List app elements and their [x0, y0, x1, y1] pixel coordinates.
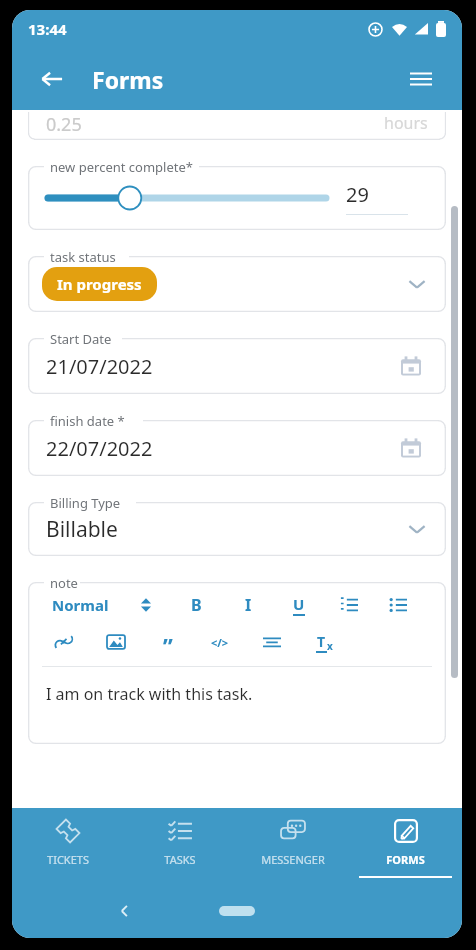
button[interactable]: 21/07/2022 — [28, 338, 446, 394]
button[interactable]: Billable — [28, 502, 446, 556]
button[interactable]: Link — [52, 630, 76, 654]
staticText: Normal — [52, 595, 109, 615]
button[interactable]: MESSENGER — [236, 808, 349, 884]
staticText: x — [327, 639, 333, 653]
staticText: 21/07/2022 — [46, 353, 153, 380]
button[interactable]: I — [235, 592, 261, 618]
button[interactable]: FORMS — [349, 808, 462, 884]
button[interactable]: Numbered list — [337, 593, 361, 617]
staticText: finish date * — [50, 412, 125, 430]
button[interactable]: In progress — [42, 267, 157, 301]
button[interactable]: In progress — [28, 256, 446, 312]
button[interactable]: Align — [260, 630, 284, 654]
staticText: new percent complete* — [50, 158, 193, 176]
staticText: T — [317, 632, 326, 651]
button[interactable]: Normal — [28, 582, 446, 744]
button[interactable]: Pick date — [396, 433, 426, 463]
button[interactable]: TICKETS — [12, 808, 124, 884]
staticText: FORMS — [386, 852, 425, 867]
button[interactable]: 29 — [28, 166, 446, 230]
staticText: I am on track with this task. — [46, 683, 253, 705]
staticText: In progress — [57, 274, 142, 294]
button[interactable]: Expand — [402, 269, 432, 299]
button[interactable]: 0.25 — [28, 112, 446, 140]
staticText: U — [293, 594, 305, 614]
staticText: hours — [384, 112, 428, 134]
staticText: Billing Type — [50, 494, 121, 512]
button[interactable]: TASKS — [124, 808, 236, 884]
staticText: Forms — [92, 64, 164, 95]
button[interactable]: </> — [208, 630, 232, 654]
button[interactable]: Image — [104, 630, 128, 654]
button[interactable]: ” — [156, 630, 180, 654]
staticText: </> — [211, 635, 229, 650]
staticText: 0.25 — [46, 112, 82, 137]
button[interactable]: Back — [32, 59, 72, 99]
staticText: 13:44 — [28, 19, 67, 39]
button[interactable]: Normal — [52, 595, 109, 615]
button[interactable]: B — [183, 592, 209, 618]
staticText: Start Date — [50, 330, 112, 348]
staticText: MESSENGER — [261, 852, 325, 867]
button[interactable]: 22/07/2022 — [28, 420, 446, 476]
button[interactable]: Menu — [400, 58, 442, 100]
staticText: task status — [50, 248, 116, 266]
staticText: Billable — [46, 515, 118, 544]
staticText: TASKS — [164, 852, 196, 867]
staticText: note — [50, 574, 78, 592]
staticText: 22/07/2022 — [46, 435, 153, 462]
button[interactable]: U — [286, 592, 312, 618]
button[interactable]: Size — [134, 593, 158, 617]
staticText: ” — [163, 630, 173, 654]
staticText: 29 — [346, 181, 369, 208]
button[interactable]: Back — [112, 898, 138, 924]
staticText: B — [191, 594, 202, 616]
button[interactable]: Bulleted list — [386, 593, 410, 617]
staticText: I — [245, 594, 252, 616]
staticText: TICKETS — [47, 852, 89, 867]
button[interactable]: T — [312, 630, 336, 654]
button[interactable]: Expand — [402, 514, 432, 544]
button[interactable]: Pick date — [396, 351, 426, 381]
